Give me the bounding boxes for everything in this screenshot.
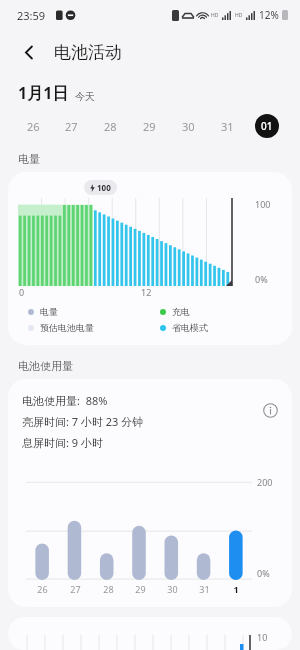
- staticText: 1: [233, 583, 239, 595]
- staticText: 电量: [18, 152, 40, 166]
- staticText: 100: [255, 198, 271, 210]
- staticText: 28: [103, 583, 114, 595]
- staticText: 10: [257, 631, 268, 643]
- staticText: 27: [65, 119, 78, 134]
- staticText: 01: [261, 119, 273, 133]
- staticText: 充电: [172, 306, 190, 317]
- staticText: 今天: [75, 90, 95, 103]
- button[interactable]: 30: [156, 583, 188, 595]
- button[interactable]: 26: [26, 583, 59, 595]
- button[interactable]: 1: [220, 583, 252, 595]
- staticText: 200: [257, 476, 273, 488]
- staticText: 亮屏时间: 7 小时 23 分钟: [22, 414, 144, 429]
- button[interactable]: 31: [208, 110, 247, 142]
- staticText: 12%: [259, 8, 279, 22]
- staticText: 12: [141, 286, 152, 298]
- staticText: 26: [37, 583, 48, 595]
- staticText: 30: [182, 119, 195, 134]
- button[interactable]: 10: [8, 617, 292, 650]
- button[interactable]: 30: [169, 110, 208, 142]
- staticText: 0: [19, 286, 25, 298]
- staticText: 23:59: [17, 8, 46, 23]
- staticText: 29: [143, 119, 156, 134]
- staticText: 31: [221, 119, 234, 134]
- button[interactable]: 27: [52, 110, 91, 142]
- staticText: 电池使用量: 88%: [22, 393, 108, 408]
- button[interactable]: 31: [188, 583, 220, 595]
- staticText: 省电模式: [172, 322, 208, 333]
- button[interactable]: 27: [59, 583, 92, 595]
- button[interactable]: 28: [91, 110, 130, 142]
- button[interactable]: 29: [124, 583, 156, 595]
- button[interactable]: 100: [8, 172, 292, 345]
- staticText: 0%: [255, 273, 268, 285]
- staticText: 预估电池电量: [40, 322, 94, 333]
- staticText: HD: [235, 12, 243, 19]
- staticText: 电池活动: [54, 42, 122, 63]
- button[interactable]: 26: [14, 110, 52, 142]
- staticText: 100: [97, 182, 111, 193]
- staticText: 电池使用量: [18, 359, 73, 373]
- staticText: 电量: [40, 306, 58, 317]
- button[interactable]: 29: [130, 110, 169, 142]
- staticText: 29: [135, 583, 146, 595]
- button[interactable]: Back: [12, 35, 46, 69]
- button[interactable]: 28: [92, 583, 124, 595]
- staticText: 0%: [257, 567, 270, 579]
- button[interactable]: 电池使用量: 88%: [8, 379, 292, 607]
- staticText: 1月1日: [18, 82, 69, 104]
- staticText: 30: [167, 583, 178, 595]
- staticText: 28: [104, 119, 117, 134]
- staticText: 27: [70, 583, 81, 595]
- staticText: HD: [211, 12, 219, 19]
- staticText: 31: [199, 583, 210, 595]
- button[interactable]: 01: [247, 110, 286, 142]
- button[interactable]: Info: [258, 393, 282, 427]
- staticText: 息屏时间: 9 小时: [22, 435, 103, 450]
- staticText: 26: [27, 119, 40, 134]
